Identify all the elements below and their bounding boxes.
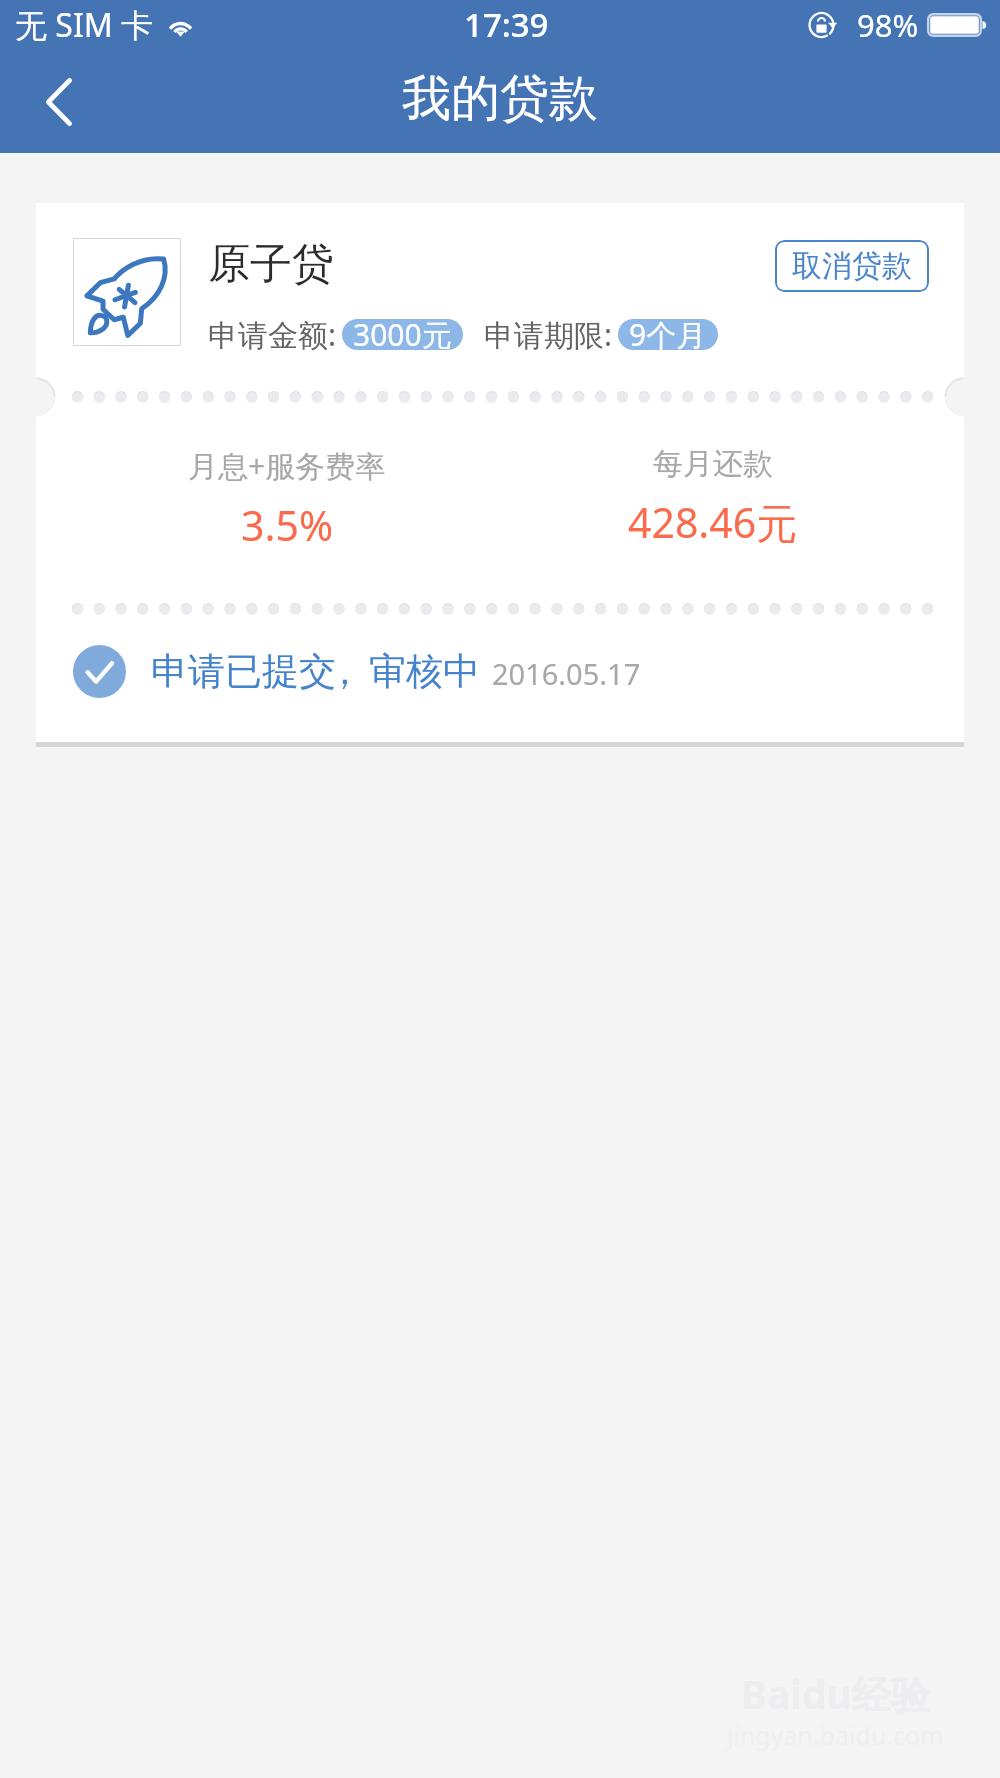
button[interactable]: Back [0,50,108,153]
button[interactable]: 取消贷款 [775,240,929,292]
staticText: 9个月 [629,314,707,355]
staticText: 原子贷 [208,238,334,291]
staticText: Baidu经验 [741,1667,930,1720]
staticText: 申请已提交 [151,648,336,695]
staticText: 无 SIM 卡 [15,3,154,47]
staticText: 审核中 [369,648,480,695]
button[interactable]: 原子贷 [36,203,964,747]
staticText: 申请金额: [208,314,337,355]
staticText: 每月还款 [653,445,773,483]
staticText: 428.46元 [628,494,798,550]
staticText: 17:39 [464,2,549,47]
staticText: 申请期限: [484,314,613,355]
staticText: 2016.05.17 [492,654,641,693]
staticText: 3.5% [241,497,333,553]
staticText: 月息+服务费率 [188,445,386,486]
staticText: 取消贷款 [792,247,912,285]
staticText: 3000元 [353,314,452,355]
staticText: 98% [857,4,919,46]
staticText: 我的贷款 [402,68,598,130]
staticText: ， [326,648,363,695]
